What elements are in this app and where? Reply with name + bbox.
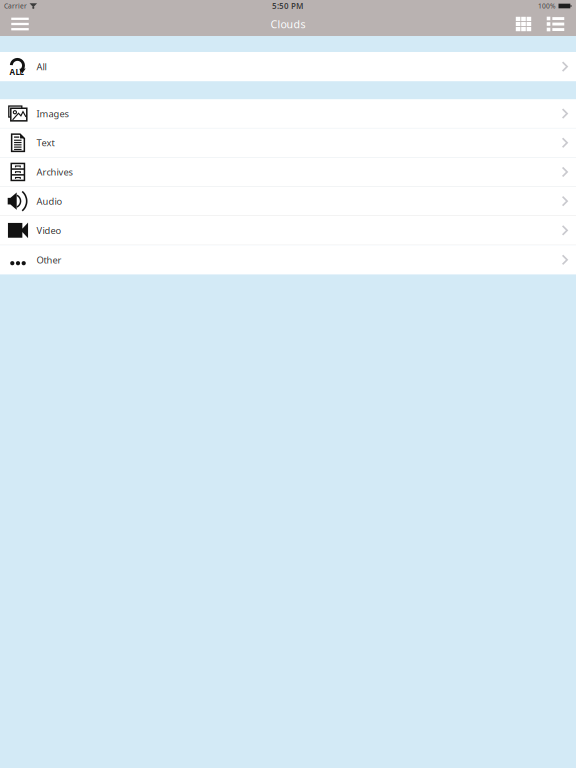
staticText: ALL bbox=[9, 67, 23, 77]
button[interactable]: List view bbox=[539, 12, 571, 36]
staticText: Clouds bbox=[270, 17, 305, 31]
button[interactable]: Audio bbox=[0, 187, 576, 216]
staticText: Archives bbox=[36, 166, 72, 178]
button[interactable]: Grid view bbox=[507, 12, 539, 36]
staticText: 5:50 PM bbox=[272, 1, 303, 11]
staticText: Other bbox=[36, 254, 61, 266]
staticText: 100% bbox=[538, 2, 556, 10]
staticText: Images bbox=[36, 107, 68, 120]
button[interactable]: ALL bbox=[0, 52, 576, 81]
button[interactable]: Archives bbox=[0, 158, 576, 187]
staticText: All bbox=[36, 60, 46, 73]
staticText: Video bbox=[36, 224, 61, 237]
staticText: Carrier bbox=[4, 2, 27, 10]
button[interactable]: Other bbox=[0, 245, 576, 274]
staticText: Audio bbox=[36, 195, 62, 207]
button[interactable]: Text bbox=[0, 128, 576, 158]
button[interactable]: Menu bbox=[3, 12, 37, 36]
button[interactable]: Images bbox=[0, 99, 576, 128]
staticText: Text bbox=[36, 137, 54, 149]
button[interactable]: Video bbox=[0, 216, 576, 245]
